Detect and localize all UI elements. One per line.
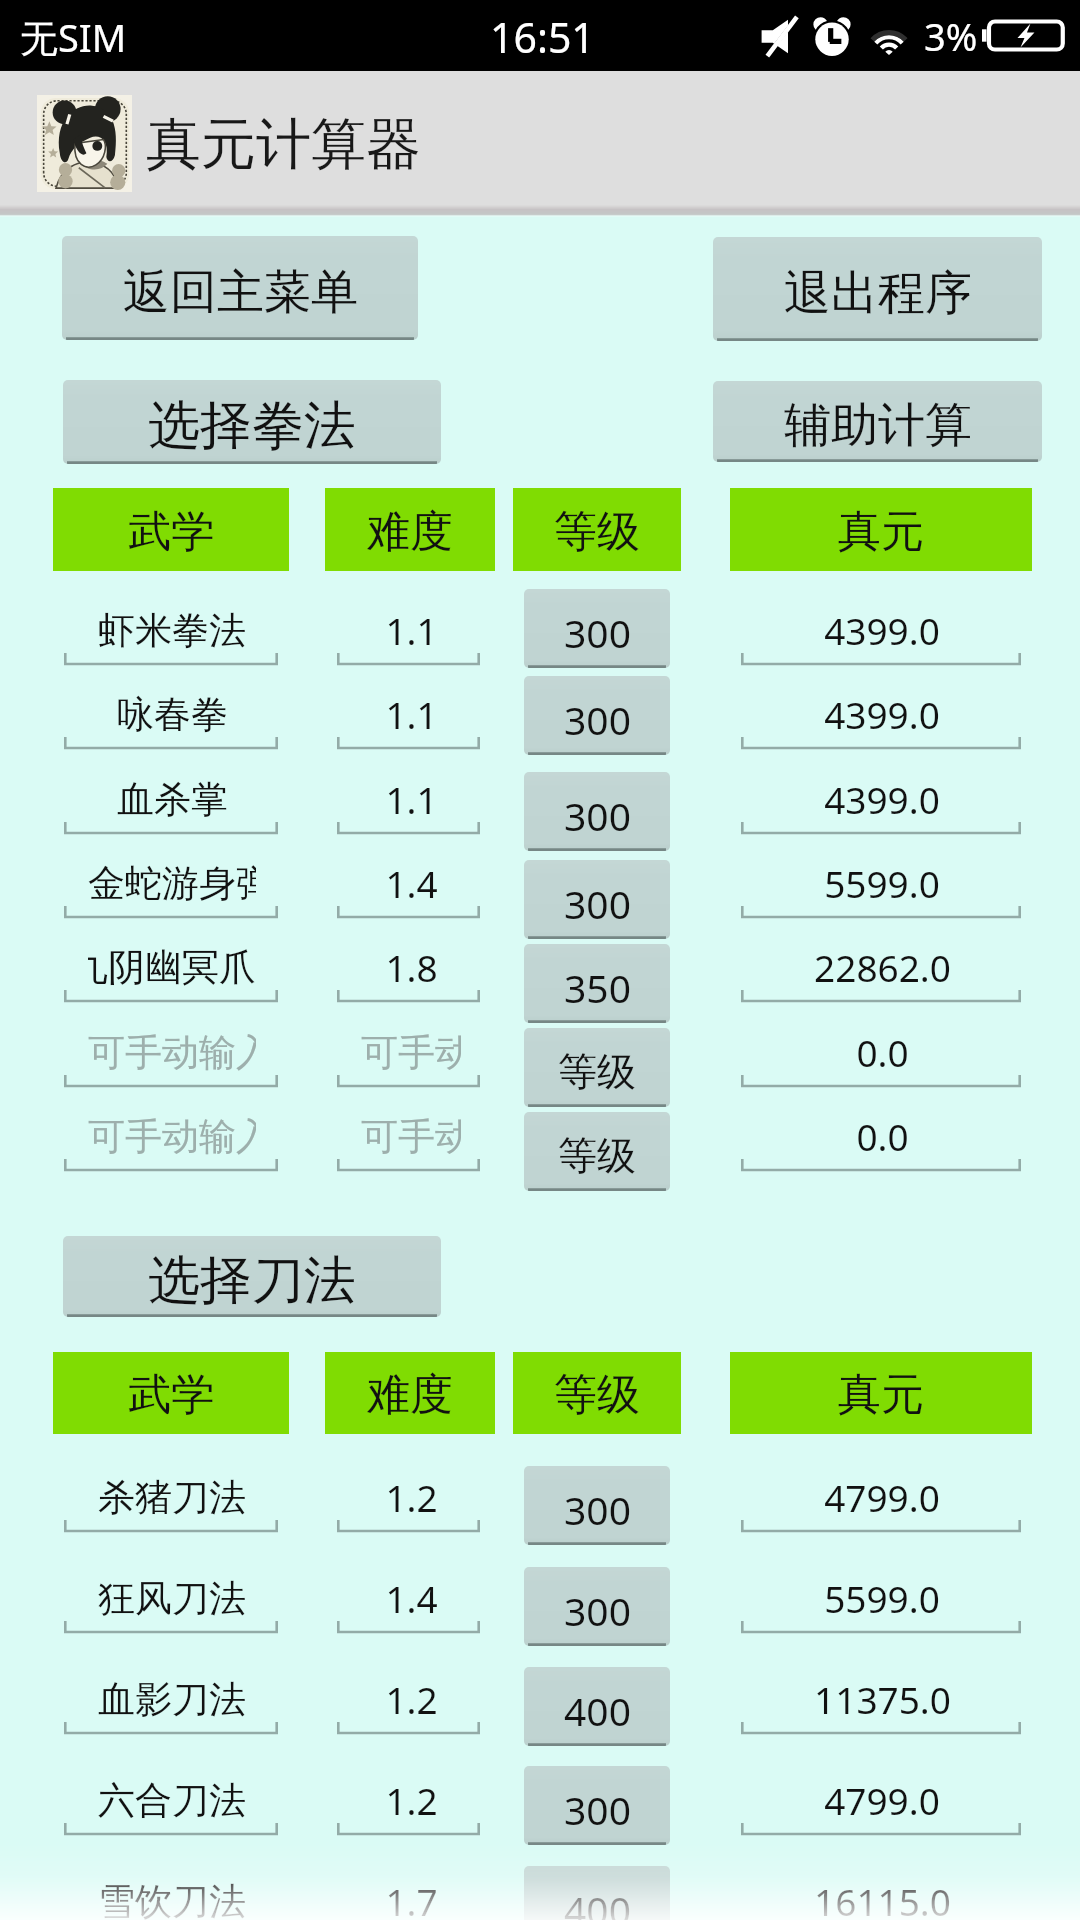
button[interactable]: 4399.0 xyxy=(765,604,999,656)
button[interactable]: 金蛇游身弹 xyxy=(88,857,256,909)
button[interactable]: 400 xyxy=(524,1866,670,1920)
button[interactable]: 六合刀法 xyxy=(88,1774,256,1826)
other: Battery charging xyxy=(982,20,1064,51)
staticText: 4399.0 xyxy=(824,689,940,739)
button[interactable]: 4799.0 xyxy=(765,1774,999,1826)
button[interactable]: 1.1 xyxy=(361,688,461,740)
other: App icon xyxy=(37,95,132,192)
button[interactable]: 4399.0 xyxy=(765,773,999,825)
button[interactable]: 可手动输入 xyxy=(361,1110,461,1162)
button[interactable]: 300 xyxy=(524,676,670,755)
staticText: 血影刀法 xyxy=(98,1676,246,1723)
button[interactable]: 1.1 xyxy=(361,604,461,656)
button[interactable]: 难度 xyxy=(325,1352,495,1434)
staticText: 350 xyxy=(564,961,631,1014)
button[interactable]: 1.8 xyxy=(361,941,461,993)
other: Alarm set xyxy=(813,16,851,56)
button[interactable]: 1.4 xyxy=(361,1572,461,1624)
staticText: 300 xyxy=(564,1584,631,1637)
staticText: 4799.0 xyxy=(824,1472,940,1522)
button[interactable]: 300 xyxy=(524,1466,670,1545)
staticText: 1.8 xyxy=(385,942,438,992)
button[interactable]: 咏春拳 xyxy=(88,688,256,740)
button[interactable]: 5599.0 xyxy=(765,857,999,909)
staticText: 九阴幽冥爪 xyxy=(88,944,256,991)
button[interactable]: 300 xyxy=(524,589,670,668)
button[interactable]: 0.0 xyxy=(765,1110,999,1162)
button[interactable]: 300 xyxy=(524,1567,670,1646)
staticText: 咏春拳 xyxy=(117,691,228,738)
staticText: 1.7 xyxy=(385,1876,438,1920)
staticText: 4799.0 xyxy=(824,1775,940,1825)
button[interactable]: 虾米拳法 xyxy=(88,604,256,656)
button[interactable]: 4399.0 xyxy=(765,688,999,740)
button[interactable]: 5599.0 xyxy=(765,1572,999,1624)
button[interactable]: 可手动输入 xyxy=(88,1026,256,1078)
button[interactable]: 300 xyxy=(524,860,670,939)
staticText: 16:51 xyxy=(490,9,595,65)
staticText: 选择拳法 xyxy=(148,393,356,459)
staticText: 3% xyxy=(924,10,978,62)
staticText: 退出程序 xyxy=(784,264,972,323)
button[interactable]: 350 xyxy=(524,944,670,1023)
button[interactable]: 4799.0 xyxy=(765,1471,999,1523)
button[interactable]: 300 xyxy=(524,1766,670,1845)
staticText: 0.0 xyxy=(856,1027,909,1077)
button[interactable]: 杀猪刀法 xyxy=(88,1471,256,1523)
staticText: 16115.0 xyxy=(814,1876,951,1920)
staticText: 返回主菜单 xyxy=(123,263,358,322)
button[interactable]: 退出程序 xyxy=(713,237,1042,341)
button[interactable]: 等级 xyxy=(524,1112,670,1191)
button[interactable]: 1.7 xyxy=(361,1875,461,1920)
staticText: 真元 xyxy=(838,505,924,559)
button[interactable]: 难度 xyxy=(325,488,495,571)
button[interactable]: 武学 xyxy=(53,1352,289,1434)
button[interactable]: 等级 xyxy=(513,1352,681,1434)
button[interactable]: 1.4 xyxy=(361,857,461,909)
staticText: 武学 xyxy=(128,505,214,559)
button[interactable]: 22862.0 xyxy=(765,941,999,993)
staticText: 300 xyxy=(564,789,631,842)
staticText: 300 xyxy=(564,1483,631,1536)
staticText: 虾米拳法 xyxy=(98,607,246,654)
staticText: 1.1 xyxy=(385,605,438,655)
staticText: 可手动输入 xyxy=(88,1029,256,1076)
button[interactable]: 等级 xyxy=(513,488,681,571)
button[interactable]: 11375.0 xyxy=(765,1673,999,1725)
button[interactable]: 0.0 xyxy=(765,1026,999,1078)
button[interactable]: 1.1 xyxy=(361,773,461,825)
staticText: 等级 xyxy=(558,1131,636,1180)
button[interactable]: 血杀掌 xyxy=(88,773,256,825)
button[interactable]: 1.2 xyxy=(361,1471,461,1523)
button[interactable]: 300 xyxy=(524,772,670,851)
button[interactable]: 1.2 xyxy=(361,1774,461,1826)
button[interactable]: 400 xyxy=(524,1667,670,1746)
button[interactable]: 可手动输入 xyxy=(361,1026,461,1078)
staticText: 可手动输入 xyxy=(88,1113,256,1160)
button[interactable]: 真元 xyxy=(730,1352,1032,1434)
button[interactable]: 16115.0 xyxy=(765,1875,999,1920)
staticText: 可手动输入 xyxy=(361,1113,461,1160)
button[interactable]: 等级 xyxy=(524,1028,670,1107)
button[interactable]: 雪饮刀法 xyxy=(88,1875,256,1920)
button[interactable]: 真元 xyxy=(730,488,1032,571)
button[interactable]: 武学 xyxy=(53,488,289,571)
button[interactable]: 狂风刀法 xyxy=(88,1572,256,1624)
staticText: 血杀掌 xyxy=(117,776,228,823)
button[interactable]: 九阴幽冥爪 xyxy=(88,941,256,993)
button[interactable]: 选择拳法 xyxy=(63,380,441,464)
button[interactable]: 血影刀法 xyxy=(88,1673,256,1725)
staticText: 300 xyxy=(564,606,631,659)
staticText: 400 xyxy=(564,1883,631,1920)
button[interactable]: 1.2 xyxy=(361,1673,461,1725)
staticText: 1.2 xyxy=(385,1674,438,1724)
button[interactable]: 可手动输入 xyxy=(88,1110,256,1162)
staticText: 雪饮刀法 xyxy=(98,1878,246,1920)
button[interactable]: 选择刀法 xyxy=(63,1236,441,1317)
staticText: 5599.0 xyxy=(824,858,940,908)
button[interactable]: 辅助计算 xyxy=(713,381,1042,462)
staticText: 1.1 xyxy=(385,689,438,739)
button[interactable]: 返回主菜单 xyxy=(62,236,418,340)
staticText: 1.2 xyxy=(385,1472,438,1522)
staticText: 选择刀法 xyxy=(148,1248,356,1314)
